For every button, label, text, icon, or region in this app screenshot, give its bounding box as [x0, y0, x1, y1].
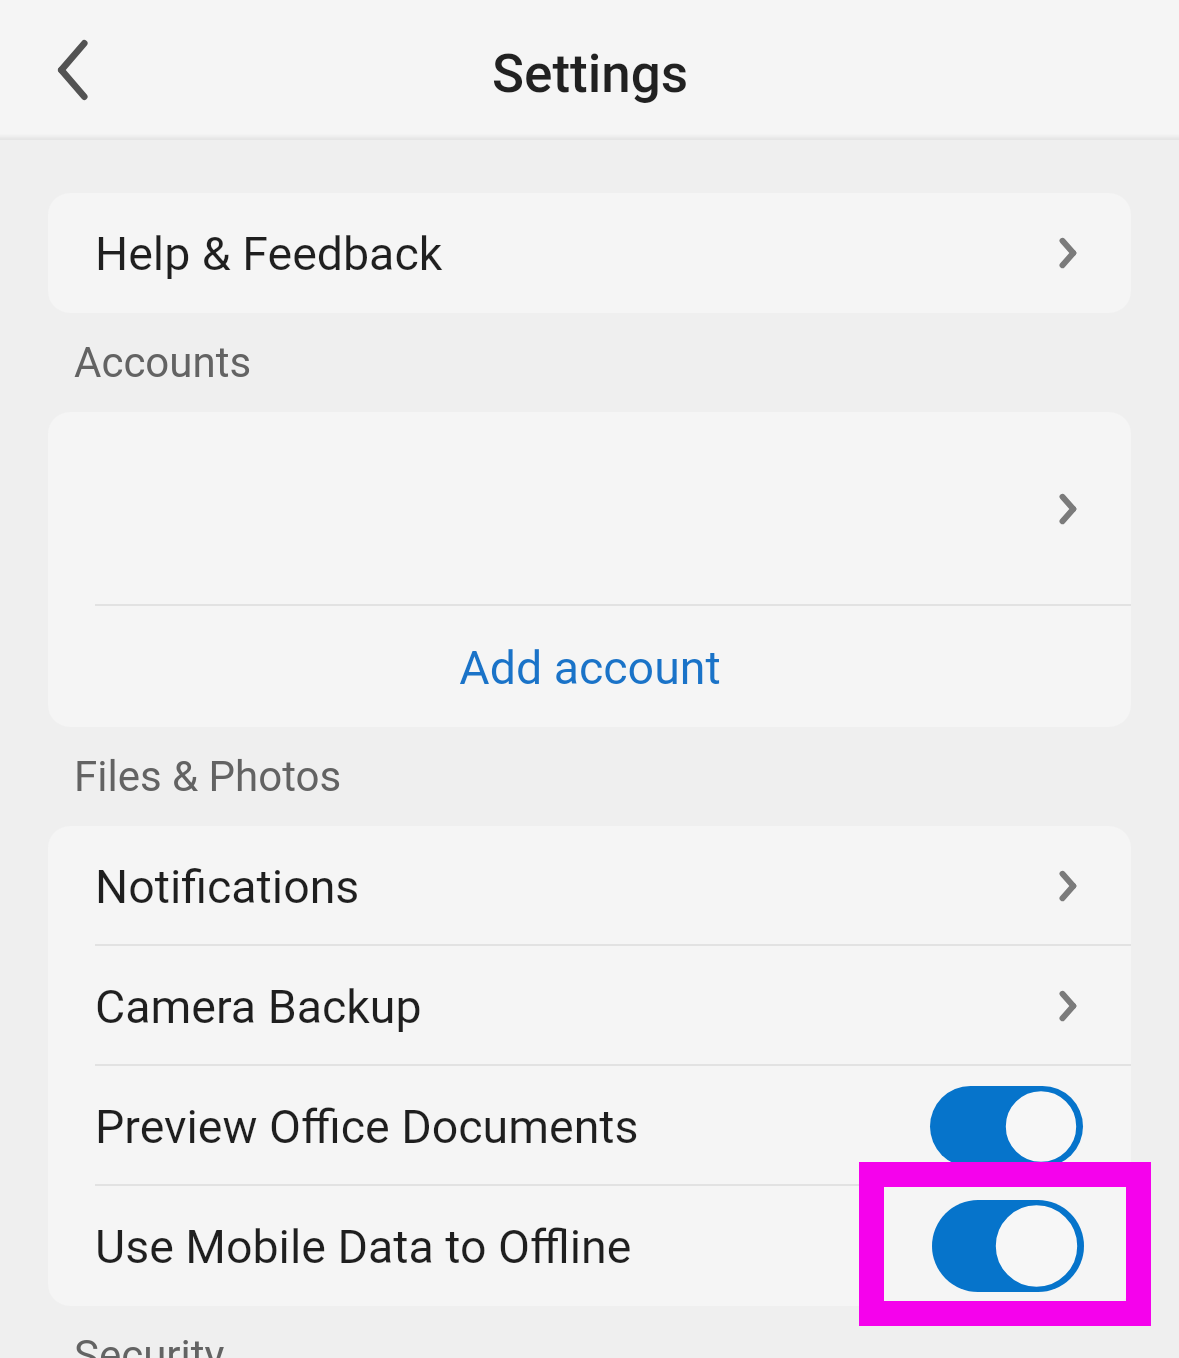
button[interactable]: Help & Feedback [48, 193, 1131, 313]
button[interactable]: Account [48, 412, 1131, 606]
button[interactable]: Use Mobile Data to Offline [48, 1186, 1131, 1306]
staticText: Camera Backup [95, 980, 422, 1034]
staticText: Files & Photos [74, 752, 342, 801]
staticText: Preview Office Documents [95, 1100, 639, 1154]
button[interactable]: Preview Office Documents [48, 1066, 1131, 1186]
staticText: Add account [459, 641, 721, 695]
button[interactable]: Add account [48, 606, 1131, 727]
staticText: Settings [492, 43, 689, 105]
button[interactable]: Camera Backup [48, 946, 1131, 1066]
staticText: Help & Feedback [95, 227, 443, 281]
staticText: Accounts [74, 338, 252, 387]
staticText: Notifications [95, 860, 360, 914]
button[interactable]: Back [28, 28, 112, 112]
staticText: Security [74, 1331, 225, 1358]
button[interactable]: Notifications [48, 826, 1131, 946]
staticText: Use Mobile Data to Offline [95, 1220, 632, 1274]
